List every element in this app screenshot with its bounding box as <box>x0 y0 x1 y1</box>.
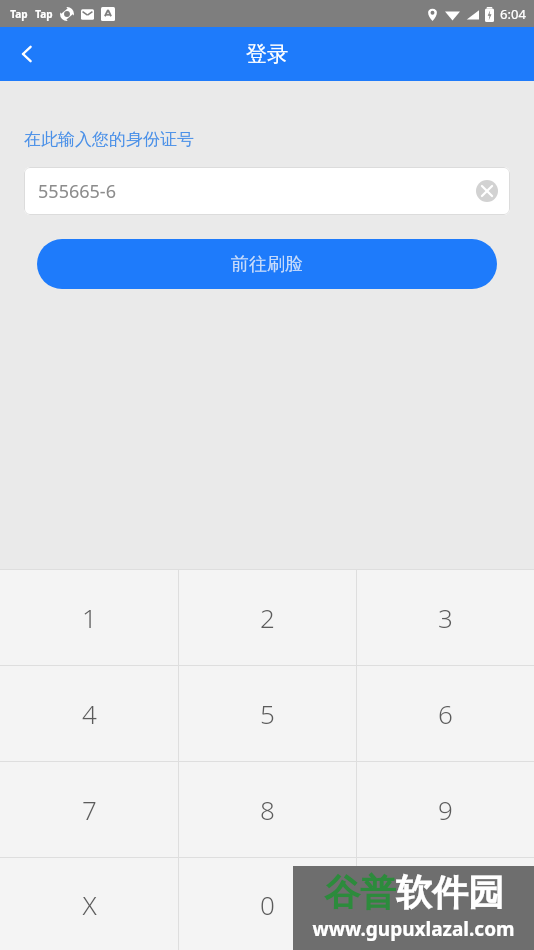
button[interactable]: 8 <box>179 762 356 857</box>
button[interactable]: Clear text <box>474 178 500 204</box>
button[interactable]: Back <box>0 27 54 81</box>
button[interactable]: 9 <box>357 762 534 857</box>
staticText: Tap <box>35 7 53 21</box>
staticText: 5 <box>260 696 275 731</box>
button[interactable] <box>357 858 534 950</box>
button[interactable]: 5 <box>179 666 356 761</box>
staticText: www.gupuxlazal.com <box>312 916 515 942</box>
staticText: 谷普 <box>324 870 396 915</box>
staticText: 4 <box>82 696 97 731</box>
button[interactable]: 4 <box>0 666 178 761</box>
staticText: 前往刷脸 <box>231 253 303 276</box>
button[interactable]: 前往刷脸 <box>37 239 497 289</box>
staticText: X <box>82 887 97 922</box>
staticText: 3 <box>438 600 453 635</box>
button[interactable]: X <box>0 858 178 950</box>
button[interactable]: 7 <box>0 762 178 857</box>
button[interactable]: 3 <box>357 570 534 665</box>
staticText: 软件园 <box>396 870 504 915</box>
staticText: 8 <box>260 792 275 827</box>
staticText: Tap <box>10 7 28 21</box>
staticText: 6:04 <box>500 5 526 23</box>
staticText: 2 <box>260 600 275 635</box>
staticText: 555665-6 <box>38 179 116 204</box>
staticText: 登录 <box>246 41 288 67</box>
staticText: 在此输入您的身份证号 <box>24 129 194 150</box>
staticText: 1 <box>82 600 97 635</box>
button[interactable]: 1 <box>0 570 178 665</box>
staticText: 0 <box>260 887 275 922</box>
staticText: 7 <box>82 792 97 827</box>
button[interactable]: 6 <box>357 666 534 761</box>
staticText: 6 <box>438 696 453 731</box>
button[interactable]: 2 <box>179 570 356 665</box>
button[interactable]: 0 <box>179 858 356 950</box>
button[interactable]: 555665-6 <box>24 167 510 215</box>
staticText: 9 <box>438 792 453 827</box>
